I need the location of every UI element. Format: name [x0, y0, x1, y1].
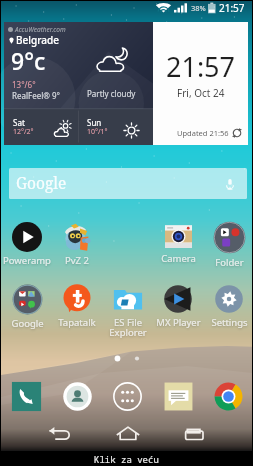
- staticText: Camera: [161, 252, 196, 265]
- button[interactable]: Google: [2, 284, 52, 330]
- button[interactable]: Poweramp: [2, 222, 52, 267]
- button[interactable]: MX Player: [153, 284, 203, 329]
- staticText: Poweramp: [3, 254, 51, 267]
- button[interactable]: Chrome: [213, 381, 244, 412]
- staticText: Belgrade: [16, 33, 59, 47]
- staticText: Partly cloudy: [87, 88, 136, 99]
- staticText: 13°/6°: [12, 79, 36, 90]
- staticText: Google: [11, 317, 44, 330]
- staticText: Folder: [215, 256, 244, 269]
- staticText: Updated 21:56: [177, 128, 229, 138]
- staticText: 21:57: [166, 48, 236, 85]
- button[interactable]: Settings: [204, 284, 253, 329]
- button[interactable]: ES File Explorer: [103, 284, 153, 339]
- staticText: Sat: [13, 117, 25, 128]
- staticText: Fri, Oct 24: [177, 86, 225, 100]
- button[interactable]: Contacts: [62, 381, 93, 412]
- staticText: ES File Explorer: [109, 316, 147, 339]
- staticText: RealFeel® 9°: [12, 90, 61, 101]
- staticText: 38%: [191, 3, 206, 13]
- staticText: 10°/1°: [87, 127, 108, 137]
- button[interactable]: PvZ 2: [52, 222, 102, 267]
- staticText: AccuWeather.com: [15, 25, 66, 34]
- staticText: Google: [16, 172, 67, 193]
- button[interactable]: Back: [46, 421, 74, 449]
- button[interactable]: AccuWeather.com: [4, 22, 153, 145]
- staticText: 21:57: [219, 1, 245, 15]
- button[interactable]: Home: [114, 421, 142, 449]
- staticText: Settings: [211, 316, 248, 329]
- button[interactable]: Tapatalk: [52, 284, 102, 329]
- button[interactable]: Folder: [204, 221, 253, 269]
- staticText: MX Player: [156, 316, 201, 329]
- button[interactable]: All apps: [112, 381, 143, 412]
- button[interactable]: Recents: [182, 421, 210, 449]
- staticText: 9°c: [11, 45, 46, 76]
- button[interactable]: Google: [9, 168, 247, 199]
- button[interactable]: 21:57: [153, 22, 248, 145]
- button[interactable]: Messages: [163, 381, 194, 412]
- staticText: PvZ 2: [65, 254, 89, 267]
- staticText: Sun: [87, 117, 102, 128]
- staticText: Klik za veću: [94, 453, 159, 465]
- staticText: 12°/2°: [13, 127, 34, 137]
- button[interactable]: Phone: [11, 381, 42, 412]
- staticText: Tapatalk: [58, 316, 96, 329]
- button[interactable]: Camera: [153, 223, 203, 265]
